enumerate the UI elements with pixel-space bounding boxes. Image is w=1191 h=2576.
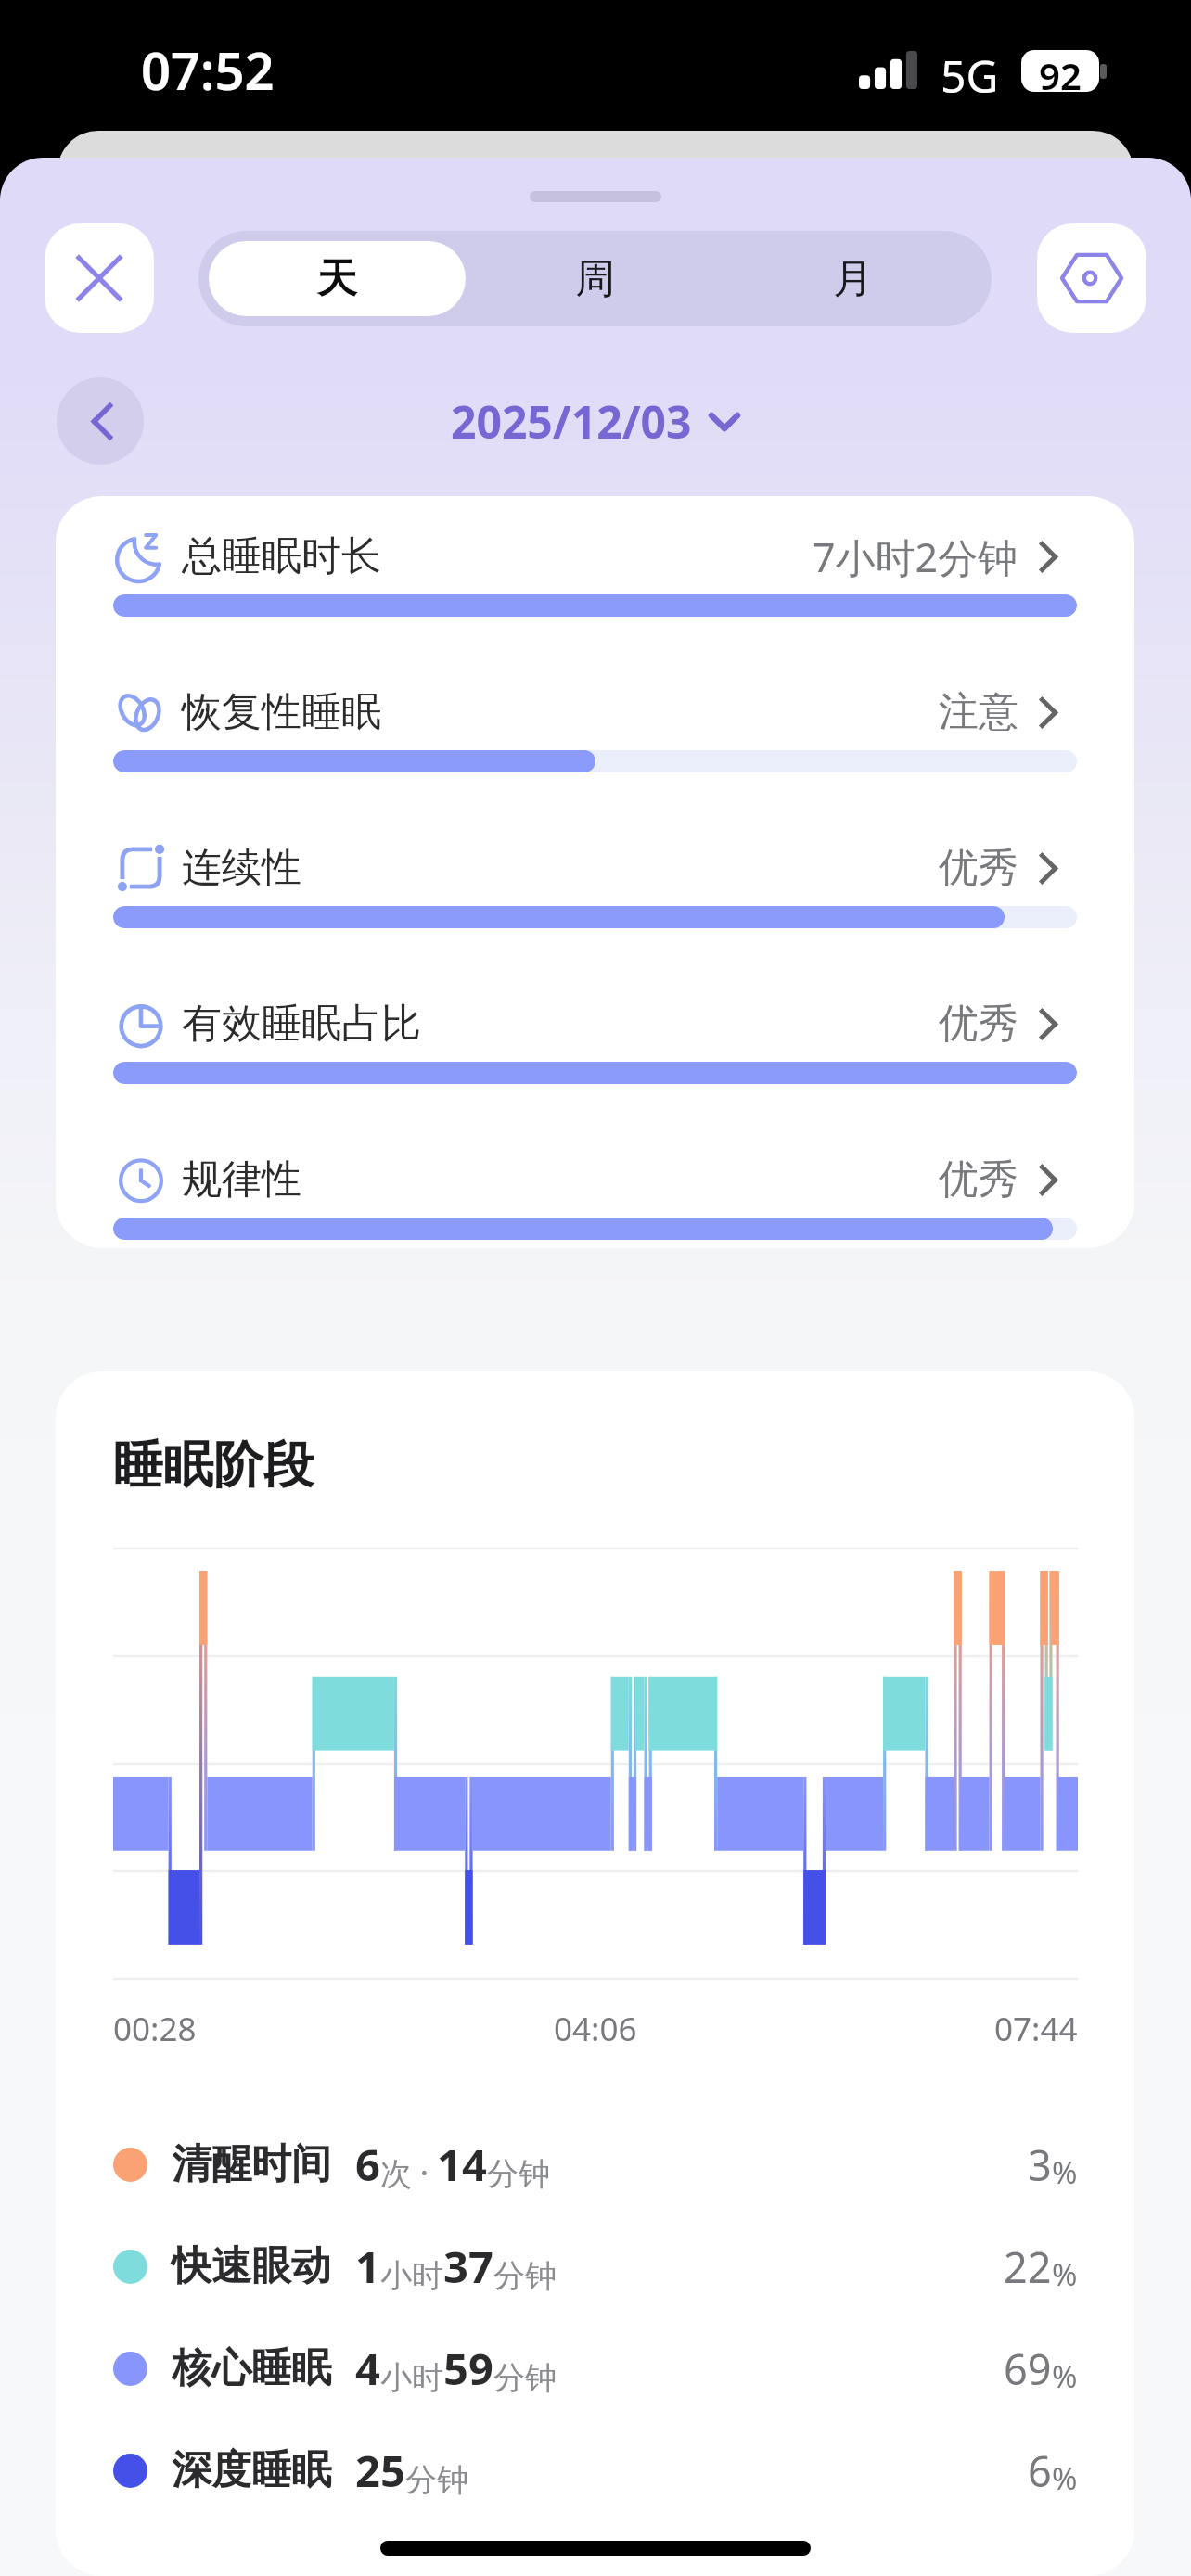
staticText: 连续性 — [182, 843, 301, 893]
staticText: 6 — [1028, 2442, 1052, 2499]
staticText: 小时 — [380, 2256, 443, 2296]
staticText: 7小时2分钟 — [813, 529, 1018, 584]
staticText: 睡眠阶段 — [113, 1434, 314, 1497]
staticText: 1 — [355, 2237, 380, 2296]
staticText: 核心睡眠 — [172, 2343, 331, 2393]
staticText: 优秀 — [939, 1154, 1018, 1205]
staticText: 优秀 — [939, 999, 1018, 1049]
staticText: 优秀 — [939, 843, 1018, 893]
button[interactable]: 周 — [466, 241, 724, 316]
staticText: 00:28 — [113, 2007, 197, 2051]
staticText: 5G — [941, 45, 999, 106]
button[interactable]: 总睡眠时长 — [56, 518, 1134, 674]
staticText: 分钟 — [493, 2358, 557, 2398]
staticText: 总睡眠时长 — [182, 531, 381, 581]
button[interactable]: 2025/12/03 — [451, 391, 740, 452]
button[interactable]: 规律性 — [56, 1141, 1134, 1240]
staticText: 月 — [833, 254, 873, 304]
staticText: 分钟 — [493, 2256, 557, 2296]
staticText: 天 — [317, 254, 357, 304]
staticText: 07:44 — [994, 2007, 1078, 2051]
staticText: 分钟 — [487, 2154, 550, 2194]
staticText: 04:06 — [554, 2007, 637, 2051]
staticText: 22 — [1004, 2238, 1052, 2295]
staticText: 4 — [355, 2339, 380, 2398]
button[interactable]: Settings — [1037, 223, 1146, 333]
staticText: 清醒时间 — [172, 2139, 331, 2189]
staticText: 有效睡眠占比 — [182, 999, 421, 1049]
staticText: 3 — [1028, 2136, 1052, 2193]
staticText: 14 — [437, 2135, 487, 2194]
staticText: 69 — [1004, 2340, 1052, 2397]
button[interactable]: Previous day — [57, 377, 144, 465]
button[interactable]: 清醒时间 — [56, 2113, 1134, 2215]
staticText: 深度睡眠 — [172, 2445, 331, 2495]
staticText: 37 — [443, 2237, 493, 2296]
staticText: 周 — [575, 254, 615, 304]
button[interactable]: 深度睡眠 — [56, 2419, 1134, 2521]
staticText: 快速眼动 — [172, 2241, 331, 2291]
button[interactable]: 连续性 — [56, 830, 1134, 986]
staticText: 规律性 — [182, 1154, 301, 1205]
button[interactable]: 快速眼动 — [56, 2215, 1134, 2317]
staticText: 07:52 — [141, 34, 275, 105]
button[interactable]: 月 — [724, 241, 981, 316]
button[interactable]: 恢复性睡眠 — [56, 674, 1134, 830]
button[interactable]: 有效睡眠占比 — [56, 986, 1134, 1141]
staticText: 6 — [355, 2135, 380, 2194]
staticText: 92 — [1039, 50, 1082, 92]
button[interactable]: Close — [45, 223, 154, 333]
staticText: 小时 — [380, 2358, 443, 2398]
staticText: 分钟 — [405, 2460, 468, 2500]
staticText: % — [1052, 2253, 1078, 2295]
staticText: % — [1052, 2457, 1078, 2499]
staticText: % — [1052, 2151, 1078, 2193]
staticText: 2025/12/03 — [451, 391, 692, 452]
staticText: 59 — [443, 2339, 493, 2398]
staticText: 恢复性睡眠 — [182, 687, 381, 737]
button[interactable]: 天 — [209, 241, 466, 316]
staticText: 25 — [355, 2441, 405, 2500]
staticText: 次 · — [380, 2151, 437, 2194]
staticText: % — [1052, 2355, 1078, 2397]
button[interactable]: 核心睡眠 — [56, 2317, 1134, 2419]
staticText: 注意 — [939, 687, 1018, 737]
